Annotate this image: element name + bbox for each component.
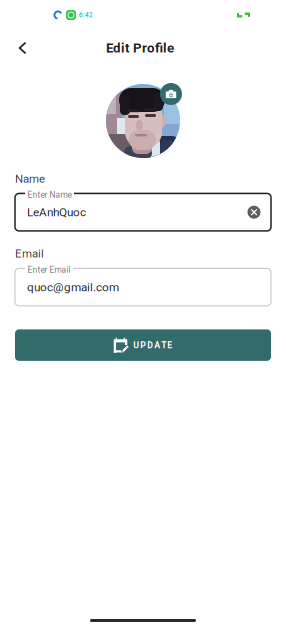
button[interactable]: Clear text [243, 201, 265, 223]
button[interactable]: Change profile photo [160, 83, 182, 105]
staticText: quoc@gmail.com [27, 280, 119, 294]
staticText: Name [15, 172, 45, 185]
staticText: Edit Profile [106, 40, 174, 56]
staticText: Enter Name [27, 190, 71, 200]
button[interactable]: U P D A T E [15, 329, 271, 361]
staticText: LeAnhQuoc [27, 205, 86, 219]
button[interactable]: Back [7, 33, 37, 63]
staticText: U P D A T E [133, 340, 172, 350]
staticText: Email [15, 247, 44, 260]
staticText: 6:42 [79, 11, 93, 19]
staticText: Enter Email [27, 265, 70, 275]
